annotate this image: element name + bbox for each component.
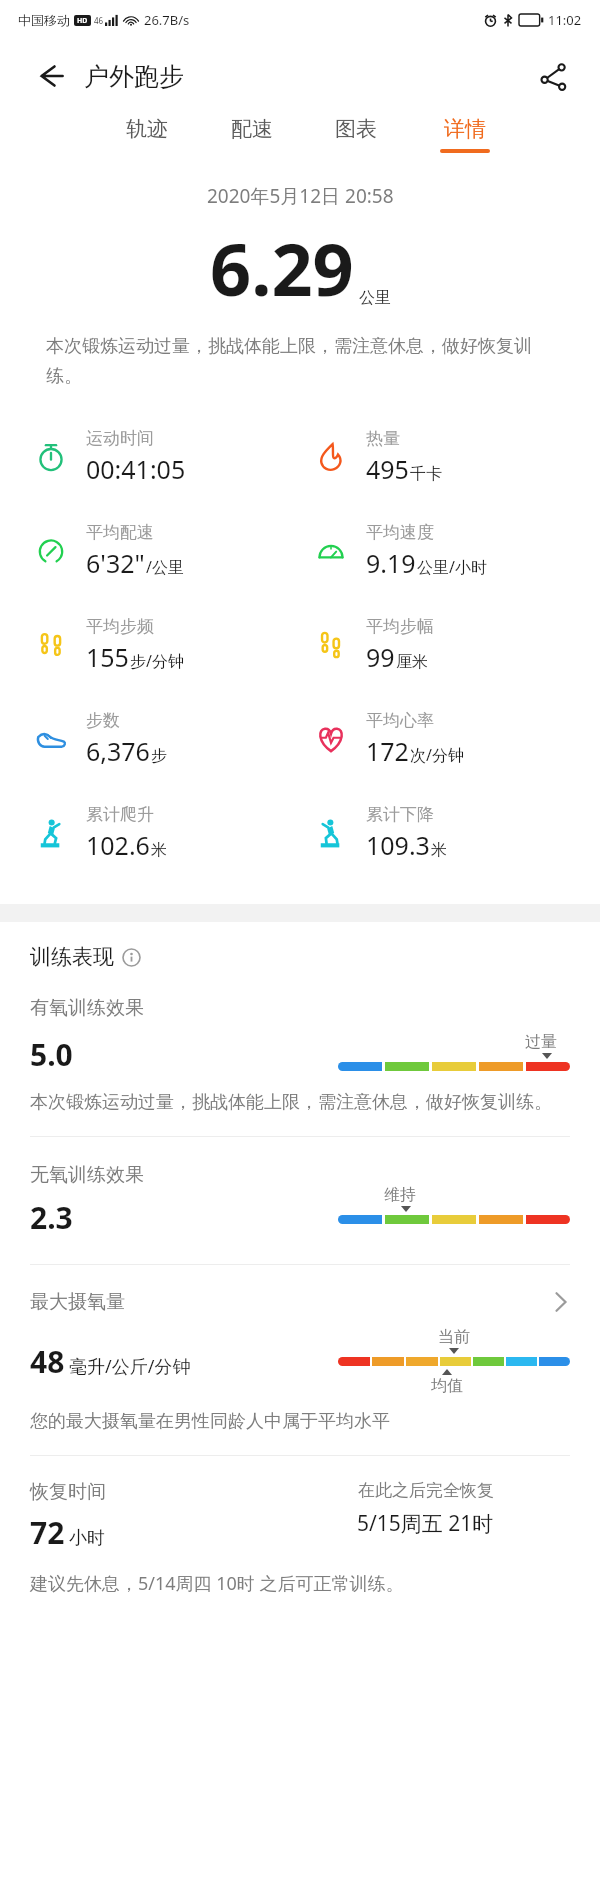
staticText: 172	[366, 734, 409, 768]
staticText: 小时	[69, 1527, 105, 1550]
staticText: 千卡	[410, 464, 442, 484]
staticText: 累计爬升	[86, 804, 154, 825]
staticText: 平均步幅	[366, 616, 434, 637]
staticText: 11:02	[548, 11, 582, 29]
staticText: 495	[366, 452, 409, 486]
button[interactable]: 恢复时间	[0, 1456, 600, 1596]
staticText: 训练表现	[30, 944, 114, 970]
staticText: 5.0	[30, 1034, 73, 1075]
button[interactable]: 无氧训练效果	[0, 1137, 600, 1264]
staticText: 厘米	[396, 652, 428, 672]
staticText: 户外跑步	[84, 61, 184, 92]
button[interactable]: 平均步频	[30, 598, 300, 692]
staticText: 平均速度	[366, 522, 434, 543]
button[interactable]: 平均配速	[30, 504, 300, 598]
staticText: 恢复时间	[30, 1480, 106, 1504]
staticText: 109.3	[366, 828, 430, 862]
staticText: 您的最大摄氧量在男性同龄人中属于平均水平	[30, 1410, 390, 1433]
staticText: 6'32"	[86, 546, 145, 580]
staticText: HD	[77, 16, 88, 26]
staticText: 毫升/公斤/分钟	[69, 1354, 191, 1379]
staticText: 平均配速	[86, 522, 154, 543]
staticText: 有氧训练效果	[30, 996, 144, 1020]
button[interactable]: 累计下降	[310, 786, 600, 880]
staticText: 9.19	[366, 546, 416, 580]
staticText: /公里	[146, 556, 184, 578]
staticText: 均值	[425, 1376, 469, 1396]
button[interactable]: 轨迹	[120, 112, 174, 153]
staticText: 00:41:05	[86, 452, 186, 486]
staticText: 6,376	[86, 734, 150, 768]
staticText: 轨迹	[126, 116, 168, 142]
staticText: 米	[151, 840, 167, 860]
button[interactable]: 详情	[434, 112, 496, 157]
staticText: 详情	[444, 116, 486, 142]
staticText: 公里	[359, 288, 391, 308]
button[interactable]: 平均心率	[310, 692, 600, 786]
button[interactable]: 配速	[225, 112, 279, 153]
staticText: 在此之后完全恢复	[358, 1480, 494, 1501]
staticText: 102.6	[86, 828, 150, 862]
button[interactable]: 运动时间	[30, 410, 300, 504]
staticText: 累计下降	[366, 804, 434, 825]
staticText: 建议先休息，5/14周四 10时 之后可正常训练。	[30, 1571, 404, 1596]
button[interactable]: 热量	[310, 410, 600, 504]
staticText: 最大摄氧量	[30, 1290, 125, 1314]
button[interactable]: 累计爬升	[30, 786, 300, 880]
staticText: 公里/小时	[417, 556, 487, 578]
staticText: 26.7B/s	[144, 11, 190, 29]
staticText: 155	[86, 640, 129, 674]
staticText: 热量	[366, 428, 400, 449]
button[interactable]: 有氧训练效果	[0, 996, 600, 1136]
button[interactable]: 步数	[30, 692, 300, 786]
staticText: 图表	[335, 116, 377, 142]
button[interactable]: Share	[532, 55, 574, 97]
button[interactable]: 平均速度	[310, 504, 600, 598]
staticText: 本次锻炼运动过量，挑战体能上限，需注意休息，做好恢复训练。	[30, 1091, 552, 1114]
staticText: 2020年5月12日 20:58	[207, 183, 394, 209]
staticText: 99	[366, 640, 395, 674]
staticText: 过量	[525, 1032, 569, 1052]
staticText: 无氧训练效果	[30, 1163, 144, 1187]
button[interactable]: Back	[30, 56, 70, 96]
staticText: 2.3	[30, 1197, 73, 1238]
staticText: 步数	[86, 710, 120, 731]
staticText: 中国移动	[18, 12, 70, 28]
staticText: 配速	[231, 116, 273, 142]
staticText: 米	[431, 840, 447, 860]
button[interactable]: 最大摄氧量	[0, 1265, 600, 1455]
staticText: 当前	[432, 1327, 476, 1347]
staticText: 平均心率	[366, 710, 434, 731]
staticText: 维持	[384, 1185, 428, 1205]
staticText: 平均步频	[86, 616, 154, 637]
staticText: 72	[30, 1512, 65, 1553]
staticText: 本次锻炼运动过量，挑战体能上限，需注意休息，做好恢复训练。	[46, 335, 554, 388]
staticText: 48	[30, 1341, 65, 1382]
staticText: 运动时间	[86, 428, 154, 449]
staticText: 5/15周五 21时	[357, 1509, 494, 1538]
button[interactable]: 图表	[329, 112, 383, 153]
staticText: 6.29	[210, 219, 354, 317]
button[interactable]: 平均步幅	[310, 598, 600, 692]
staticText: 步/分钟	[130, 650, 184, 672]
staticText: 46	[94, 15, 104, 26]
staticText: 次/分钟	[410, 744, 464, 766]
staticText: 步	[151, 746, 167, 766]
